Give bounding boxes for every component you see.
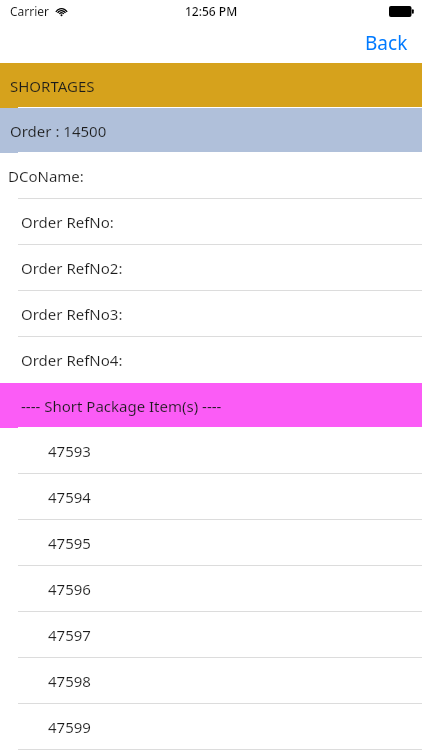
button[interactable]: 47597 bbox=[0, 612, 422, 658]
staticText: 47593 bbox=[48, 441, 91, 461]
button[interactable]: 47599 bbox=[0, 704, 422, 750]
staticText: Order : 14500 bbox=[10, 121, 107, 141]
staticText: 47598 bbox=[48, 671, 91, 691]
button[interactable]: Order RefNo: bbox=[0, 199, 422, 245]
button[interactable]: 47593 bbox=[0, 428, 422, 474]
staticText: Order RefNo2: bbox=[21, 258, 123, 278]
staticText: 47594 bbox=[48, 487, 91, 507]
button[interactable]: ---- Short Package Item(s) ---- bbox=[0, 383, 422, 428]
staticText: ---- Short Package Item(s) ---- bbox=[21, 396, 222, 416]
staticText: Back bbox=[365, 30, 408, 56]
button[interactable]: Order RefNo2: bbox=[0, 245, 422, 291]
button[interactable]: DCoName: bbox=[0, 153, 422, 199]
button[interactable]: Back bbox=[349, 26, 422, 60]
button[interactable]: Order : 14500 bbox=[0, 108, 422, 153]
staticText: Order RefNo4: bbox=[21, 350, 123, 370]
button[interactable]: 47595 bbox=[0, 520, 422, 566]
button[interactable]: Order RefNo3: bbox=[0, 291, 422, 337]
button[interactable]: 47598 bbox=[0, 658, 422, 704]
staticText: SHORTAGES bbox=[10, 76, 95, 96]
button[interactable]: 47594 bbox=[0, 474, 422, 520]
staticText: DCoName: bbox=[8, 166, 84, 186]
staticText: 47595 bbox=[48, 533, 91, 553]
staticText: 47596 bbox=[48, 579, 91, 599]
button[interactable]: Order RefNo4: bbox=[0, 337, 422, 383]
staticText: Carrier bbox=[10, 3, 50, 19]
staticText: Order RefNo: bbox=[21, 212, 114, 232]
button[interactable]: SHORTAGES bbox=[0, 63, 422, 108]
staticText: 47599 bbox=[48, 717, 91, 737]
staticText: Order RefNo3: bbox=[21, 304, 123, 324]
staticText: 47597 bbox=[48, 625, 91, 645]
button[interactable]: 47596 bbox=[0, 566, 422, 612]
staticText: 12:56 PM bbox=[185, 3, 238, 19]
